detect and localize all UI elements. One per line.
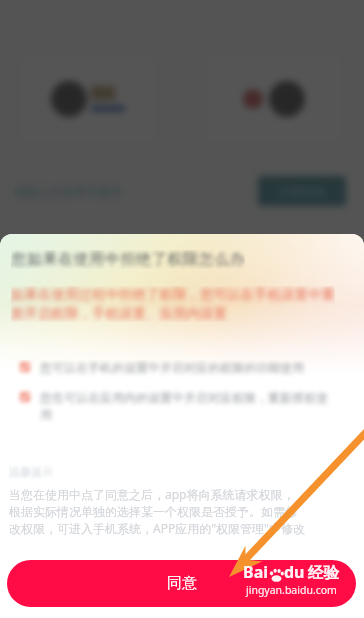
staticText: 您也可以在应用内的设置中开启对应权限，重新授权使 用 <box>40 390 328 422</box>
staticText: Bai <box>243 561 269 583</box>
staticText: 温馨提示 <box>9 465 53 479</box>
staticText: du <box>284 561 305 583</box>
button[interactable]: 同意 <box>7 560 356 607</box>
staticText: 您如果在使用中拒绝了权限怎么办 <box>11 250 245 269</box>
staticText: 经验 <box>308 563 339 583</box>
staticText: 您可以在手机的设置中开启对应的权限的功能使用 <box>40 360 304 375</box>
staticText: jingyan.baidu.com <box>246 583 337 597</box>
staticText: 当您在使用中点了同意之后，app将向系统请求权限， 根据实际情况单独的选择某一个… <box>9 486 305 537</box>
staticText: 同意 <box>167 574 197 593</box>
staticText: 如果在使用过程中拒绝了权限，您可以在手机设置中重 新开启权限，手机设置、应用内设… <box>11 286 335 322</box>
